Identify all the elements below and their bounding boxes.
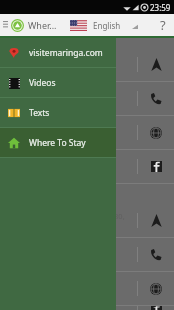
staticText: Rua Rubens Sebastião Maria, 80,: [10, 211, 125, 221]
staticText: 23:59: [150, 2, 171, 13]
button[interactable]: Call: [138, 82, 174, 115]
staticText: 44 30284500: [10, 94, 55, 104]
button[interactable]: 44 30317000: [0, 238, 174, 271]
button[interactable]: Open navigation drawer: [1, 15, 9, 35]
staticText: ?: [160, 16, 166, 34]
button[interactable]: http://hotelbandeirantes.br: [0, 116, 174, 149]
staticText: https://www.facebook.com/: [10, 157, 108, 167]
staticText: Videos: [29, 77, 56, 89]
button[interactable]: Directions: [138, 204, 174, 237]
staticText: Where To Stay: [29, 137, 86, 149]
button[interactable]: Where To Stay: [0, 128, 116, 157]
button[interactable]: Rua Pioneiro Manoel: [0, 48, 174, 81]
staticText: Maringa - PR: [10, 65, 56, 75]
button[interactable]: Help: [154, 16, 172, 34]
button[interactable]: Rua Rubens Sebastião Maria, 80,: [0, 204, 174, 237]
button[interactable]: English: [70, 20, 138, 31]
staticText: Texts: [29, 107, 50, 119]
button[interactable]: Facebook: [138, 306, 174, 310]
button[interactable]: https://www.facebook.com/: [0, 150, 174, 183]
button[interactable]: Texts: [0, 98, 116, 127]
staticText: Wher...: [28, 19, 57, 31]
button[interactable]: 44 30284500: [0, 82, 174, 115]
staticText: visitemaringa.com: [29, 47, 103, 59]
button[interactable]: http://hotelgaph.com.br: [0, 272, 174, 305]
staticText: English: [93, 20, 121, 31]
button[interactable]: Directions: [138, 48, 174, 81]
button[interactable]: Videos: [0, 68, 116, 97]
button[interactable]: https://www.facebook.com/: [0, 306, 174, 310]
button[interactable]: visitemaringa.com: [0, 38, 116, 67]
button[interactable]: Website: [138, 272, 174, 305]
button[interactable]: Facebook: [138, 150, 174, 183]
staticText: Rua Pioneiro Manoel: [10, 55, 84, 65]
button[interactable]: Call: [138, 238, 174, 271]
button[interactable]: Website: [138, 116, 174, 149]
